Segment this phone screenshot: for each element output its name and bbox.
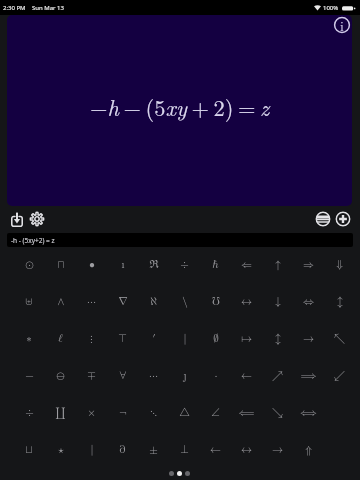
- button[interactable]: |: [76, 431, 107, 468]
- button[interactable]: ∗: [13, 320, 45, 357]
- button[interactable]: ¬: [107, 394, 138, 431]
- button[interactable]: ↕: [324, 283, 355, 320]
- staticText: -h - (5xy+2) = z: [11, 236, 55, 245]
- button[interactable]: ∇: [107, 283, 138, 320]
- staticText: \: [182, 296, 188, 307]
- staticText: ⟺: [300, 407, 317, 418]
- button[interactable]: ⋆: [45, 431, 76, 468]
- staticText: ↕: [337, 296, 343, 307]
- button[interactable]: \: [169, 283, 200, 320]
- button[interactable]: △: [169, 394, 200, 431]
- button[interactable]: ∓: [76, 357, 107, 394]
- staticText: ⇒: [303, 259, 314, 270]
- button[interactable]: ⊔: [13, 431, 45, 468]
- staticText: ±: [149, 444, 158, 455]
- button[interactable]: →: [293, 320, 324, 357]
- button[interactable]: ′: [138, 320, 169, 357]
- button[interactable]: ⟹: [293, 357, 324, 394]
- button[interactable]: ⊤: [107, 320, 138, 357]
- button[interactable]: Info: [333, 16, 351, 34]
- button[interactable]: ∧: [45, 283, 76, 320]
- button[interactable]: ⊖: [45, 357, 76, 394]
- staticText: ⊎: [25, 296, 33, 307]
- staticText: ↖: [334, 333, 345, 344]
- button[interactable]: ←: [231, 357, 262, 394]
- button[interactable]: ÷: [13, 394, 45, 431]
- staticText: −: [25, 370, 34, 381]
- button[interactable]: ℵ: [138, 283, 169, 320]
- button[interactable]: ↦: [231, 320, 262, 357]
- button[interactable]: ⇐: [231, 246, 262, 283]
- button[interactable]: ÷: [169, 246, 200, 283]
- button[interactable]: ⟺: [293, 394, 324, 431]
- button[interactable]: ×: [76, 394, 107, 431]
- staticText: ∐: [55, 407, 66, 418]
- button[interactable]: ↘: [262, 394, 293, 431]
- button[interactable]: ↙: [324, 357, 355, 394]
- button[interactable]: ∠: [200, 394, 231, 431]
- button[interactable]: ℓ: [45, 320, 76, 357]
- staticText: ℧: [212, 296, 220, 307]
- button[interactable]: ↕: [262, 320, 293, 357]
- button[interactable]: ⇔: [293, 283, 324, 320]
- staticText: ↔: [241, 296, 252, 307]
- button[interactable]: ⋯: [138, 357, 169, 394]
- staticText: ↓: [275, 296, 281, 307]
- button[interactable]: ℜ: [138, 246, 169, 283]
- button[interactable]: ⇒: [293, 246, 324, 283]
- staticText: ⊖: [56, 370, 65, 381]
- button[interactable]: ⋱: [138, 394, 169, 431]
- button[interactable]: ı: [107, 246, 138, 283]
- button[interactable]: ±: [138, 431, 169, 468]
- button[interactable]: ⇑: [293, 431, 324, 468]
- button[interactable]: ⟸: [231, 394, 262, 431]
- button[interactable]: |: [169, 320, 200, 357]
- button[interactable]: •: [76, 246, 107, 283]
- button[interactable]: ⊥: [169, 431, 200, 468]
- staticText: ¬: [119, 407, 127, 418]
- button[interactable]: ℧: [200, 283, 231, 320]
- button[interactable]: Settings: [29, 211, 45, 227]
- staticText: |: [183, 333, 187, 344]
- button[interactable]: ⊙: [13, 246, 45, 283]
- staticText: 2:30 PM: [3, 4, 26, 12]
- button[interactable]: ↔: [231, 431, 262, 468]
- button[interactable]: ↓: [262, 283, 293, 320]
- button[interactable]: ⇓: [324, 246, 355, 283]
- button[interactable]: ↗: [262, 357, 293, 394]
- button[interactable]: ←: [200, 431, 231, 468]
- button[interactable]: −: [13, 357, 45, 394]
- button[interactable]: ℏ: [200, 246, 231, 283]
- button[interactable]: →: [262, 431, 293, 468]
- staticText: △: [179, 407, 190, 418]
- button[interactable]: ⊓: [45, 246, 76, 283]
- staticText: ⋯: [149, 370, 158, 381]
- staticText: ⇐: [241, 259, 252, 270]
- button[interactable]: ⊎: [13, 283, 45, 320]
- button[interactable]: ↑: [262, 246, 293, 283]
- button[interactable]: Add: [335, 211, 351, 227]
- staticText: ′: [152, 333, 156, 344]
- button[interactable]: ↔: [231, 283, 262, 320]
- button[interactable]: ∂: [107, 431, 138, 468]
- staticText: ⊤: [118, 333, 127, 344]
- staticText: ∓: [87, 370, 96, 381]
- staticText: ⊓: [57, 259, 65, 270]
- button[interactable]: ȷ: [169, 357, 200, 394]
- staticText: ↘: [272, 407, 283, 418]
- staticText: ℏ: [212, 259, 219, 270]
- button[interactable]: ∐: [45, 394, 76, 431]
- button[interactable]: ∅: [200, 320, 231, 357]
- button[interactable]: ↖: [324, 320, 355, 357]
- button[interactable]: ∀: [107, 357, 138, 394]
- button[interactable]: ⋮: [76, 320, 107, 357]
- staticText: ↔: [241, 444, 252, 455]
- button[interactable]: List: [315, 211, 331, 227]
- button[interactable]: -h - (5xy+2) = z: [7, 233, 353, 247]
- button[interactable]: ⋯: [76, 283, 107, 320]
- button[interactable]: Export: [11, 212, 23, 227]
- staticText: ∧: [57, 296, 65, 307]
